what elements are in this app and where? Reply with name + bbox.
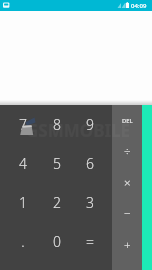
button[interactable]: 8 xyxy=(40,105,73,144)
button[interactable]: Delete xyxy=(112,105,142,136)
button[interactable]: 1 xyxy=(6,183,40,222)
staticText: 8 xyxy=(53,115,61,134)
button[interactable]: 6 xyxy=(73,144,106,183)
staticText: + xyxy=(124,237,131,253)
staticText: DEL xyxy=(122,117,133,125)
button[interactable]: = xyxy=(73,222,106,261)
button[interactable]: 0 xyxy=(40,222,73,261)
staticText: 4 xyxy=(19,154,27,173)
staticText: 0 xyxy=(53,232,61,251)
button[interactable]: Divide xyxy=(112,136,142,167)
staticText: 9 xyxy=(86,115,94,134)
staticText: 5 xyxy=(53,154,61,173)
button[interactable]: 4 xyxy=(6,144,40,183)
staticText: 6 xyxy=(86,154,94,173)
staticText: × xyxy=(124,175,131,191)
staticText: ÷ xyxy=(124,144,131,160)
staticText: − xyxy=(124,206,131,222)
button[interactable]: 3 xyxy=(73,183,106,222)
button[interactable]: 7 xyxy=(6,105,40,144)
staticText: 2 xyxy=(53,193,61,212)
staticText: . xyxy=(21,232,25,251)
button[interactable]: Multiply xyxy=(112,167,142,198)
staticText: GSMMOBILE xyxy=(26,119,131,142)
button[interactable]: 5 xyxy=(40,144,73,183)
button[interactable]: 9 xyxy=(73,105,106,144)
staticText: = xyxy=(86,232,94,251)
button[interactable]: 2 xyxy=(40,183,73,222)
staticText: 04:09 xyxy=(131,2,147,10)
staticText: 3 xyxy=(86,193,94,212)
button[interactable]: Subtract xyxy=(112,198,142,229)
staticText: 1 xyxy=(19,193,27,212)
button[interactable]: . xyxy=(6,222,40,261)
button[interactable]: Add xyxy=(112,229,142,260)
staticText: 7 xyxy=(19,115,27,134)
